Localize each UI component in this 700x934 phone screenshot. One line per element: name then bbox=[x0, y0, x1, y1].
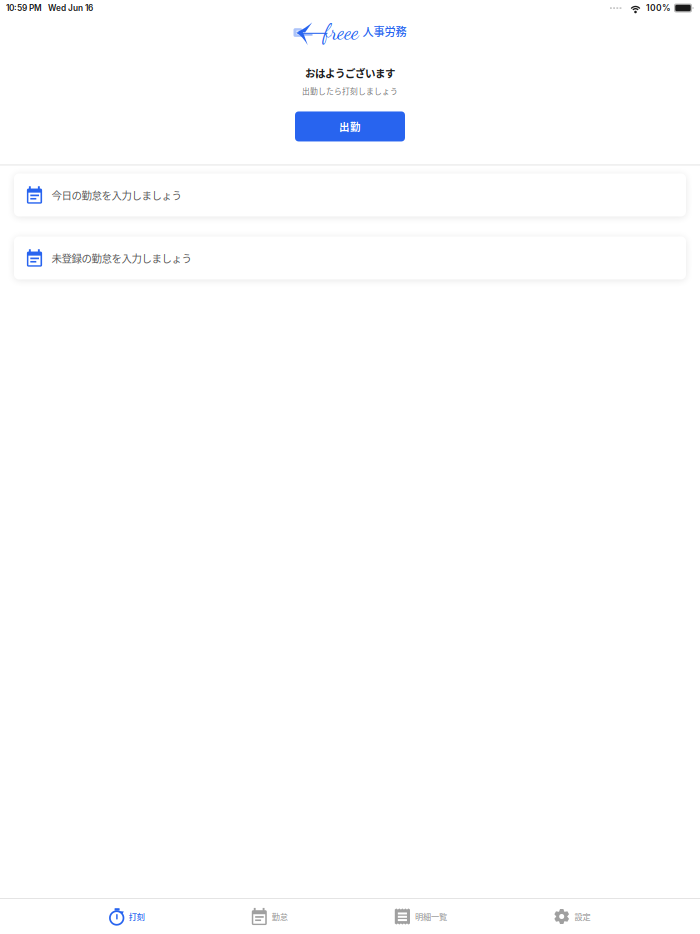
staticText: 明細一覧 bbox=[415, 911, 447, 922]
staticText: 打刻 bbox=[129, 911, 145, 922]
staticText: 出勤 bbox=[339, 119, 361, 134]
button[interactable]: 打刻 bbox=[110, 901, 145, 931]
staticText: おはようございます bbox=[305, 65, 395, 80]
staticText: 10:59 PM Wed Jun 16 bbox=[6, 3, 93, 13]
button[interactable]: 設定 bbox=[554, 901, 590, 931]
staticText: 人事労務 bbox=[362, 23, 406, 39]
staticText: 勤怠 bbox=[272, 911, 288, 922]
staticText: 100% bbox=[646, 3, 671, 13]
button[interactable]: 出勤 bbox=[295, 111, 405, 141]
staticText: 設定 bbox=[574, 911, 590, 922]
staticText: freee bbox=[323, 19, 358, 45]
button[interactable]: 明細一覧 bbox=[395, 901, 447, 931]
button[interactable]: 未登録の勤怠を入力しましょう bbox=[14, 236, 686, 279]
staticText: 出勤したら打刻しましょう bbox=[302, 85, 398, 96]
button[interactable]: 今日の勤怠を入力しましょう bbox=[14, 173, 686, 216]
staticText: 今日の勤怠を入力しましょう bbox=[51, 187, 181, 203]
button[interactable]: 勤怠 bbox=[252, 901, 288, 931]
staticText: 未登録の勤怠を入力しましょう bbox=[51, 250, 191, 266]
